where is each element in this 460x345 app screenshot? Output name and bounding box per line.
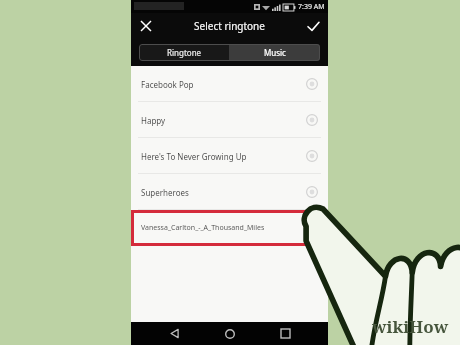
button[interactable]: Ringtone [139, 44, 229, 61]
button[interactable]: Superheroes [131, 174, 328, 210]
button[interactable]: Back [161, 322, 187, 345]
staticText: Happy [141, 115, 306, 126]
staticText: Vanessa_Carlton_-_A_Thousand_Miles [141, 223, 306, 233]
button[interactable]: Here's To Never Growing Up [131, 138, 328, 174]
staticText: Music [264, 47, 286, 58]
button[interactable]: Facebook Pop [131, 66, 328, 102]
staticText: Facebook Pop [141, 79, 306, 90]
staticText: wikiHow [372, 315, 449, 338]
button[interactable]: Close [136, 16, 156, 36]
button[interactable]: Home [217, 322, 243, 345]
staticText: Superheroes [141, 187, 306, 198]
staticText: Select ringtone [194, 19, 265, 33]
staticText: Here's To Never Growing Up [141, 151, 306, 162]
button[interactable]: Music [229, 44, 320, 61]
button[interactable]: Confirm selection [303, 16, 323, 36]
button[interactable]: Happy [131, 102, 328, 138]
staticText: 7:39 AM [298, 2, 325, 12]
staticText: Ringtone [167, 47, 202, 58]
button[interactable]: Recent apps [272, 322, 298, 345]
button[interactable]: Vanessa_Carlton_-_A_Thousand_Miles [131, 210, 328, 246]
